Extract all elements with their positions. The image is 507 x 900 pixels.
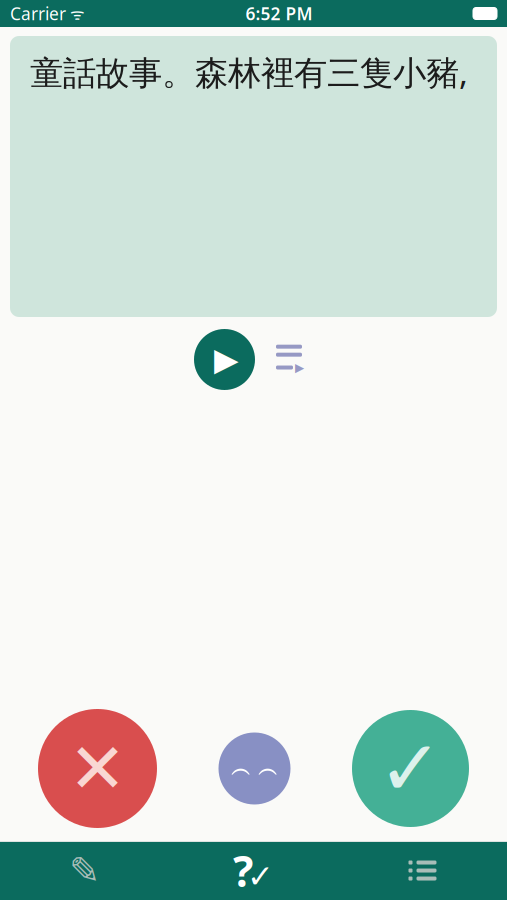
button[interactable]: Wrong [38,709,157,828]
staticText: ᯤ [66,3,85,24]
staticText: ︵ [258,756,278,781]
staticText: ✓ [247,858,274,895]
button[interactable]: Play queue [269,337,313,381]
button[interactable]: Correct [352,710,469,827]
staticText: ✎ [69,849,100,892]
staticText: 6:52 PM [245,2,312,25]
staticText: 童話故事。森林裡有三隻小豬, [30,50,468,94]
staticText: ✕ [68,729,126,808]
button[interactable]: Skip [218,732,290,804]
staticText: ▶ [295,361,304,374]
button[interactable]: List [338,841,507,900]
staticText: Carrier [10,2,66,25]
staticText: ︵ [231,756,251,781]
staticText: ? [233,842,253,899]
button[interactable]: Edit [0,841,169,900]
button[interactable]: Quiz [169,841,338,900]
staticText: ✓ [378,725,443,812]
button[interactable]: Play [194,329,255,390]
staticText: ▶ [214,341,239,378]
